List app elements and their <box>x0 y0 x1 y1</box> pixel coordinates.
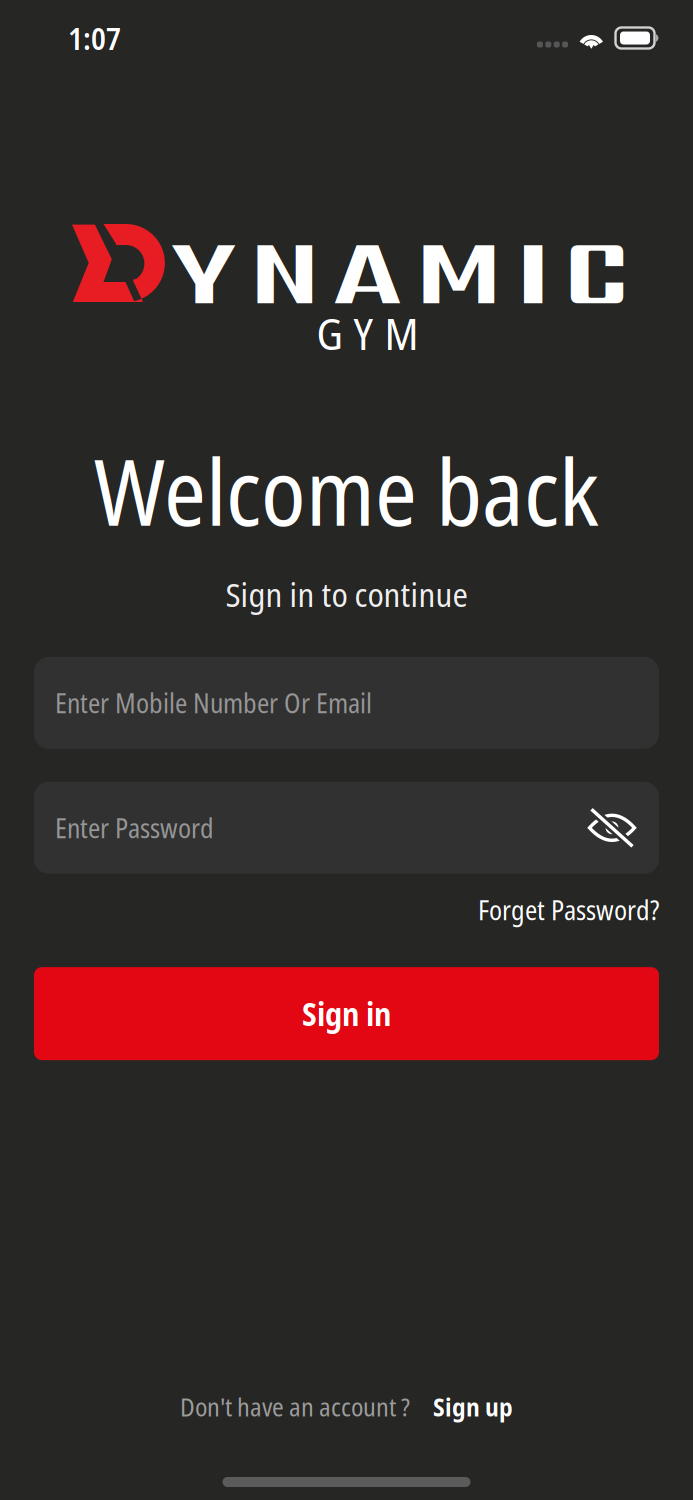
staticText: Sign in to continue <box>225 571 467 617</box>
button[interactable]: Sign up <box>433 1389 513 1424</box>
staticText: Forget Password? <box>478 892 659 928</box>
button[interactable]: Forget Password? <box>478 892 659 928</box>
staticText: Enter Mobile Number Or Email <box>55 685 372 721</box>
staticText: Welcome back <box>94 429 599 552</box>
staticText: 1:07 <box>68 17 121 59</box>
staticText: Sign in <box>302 992 391 1035</box>
staticText: A <box>333 207 401 335</box>
staticText: G <box>316 303 342 363</box>
staticText: N <box>250 207 318 335</box>
staticText: C <box>564 207 627 335</box>
staticText: Enter Password <box>55 810 214 846</box>
staticText: M <box>384 303 418 363</box>
staticText: I <box>516 207 549 335</box>
button[interactable]: Show password <box>571 791 637 865</box>
staticText: Don't have an account ? <box>180 1389 410 1424</box>
staticText: M <box>416 207 501 335</box>
staticText: Y <box>353 303 373 363</box>
button[interactable]: Sign in <box>34 967 659 1060</box>
staticText: Y <box>171 207 235 335</box>
staticText: Sign up <box>433 1389 513 1424</box>
